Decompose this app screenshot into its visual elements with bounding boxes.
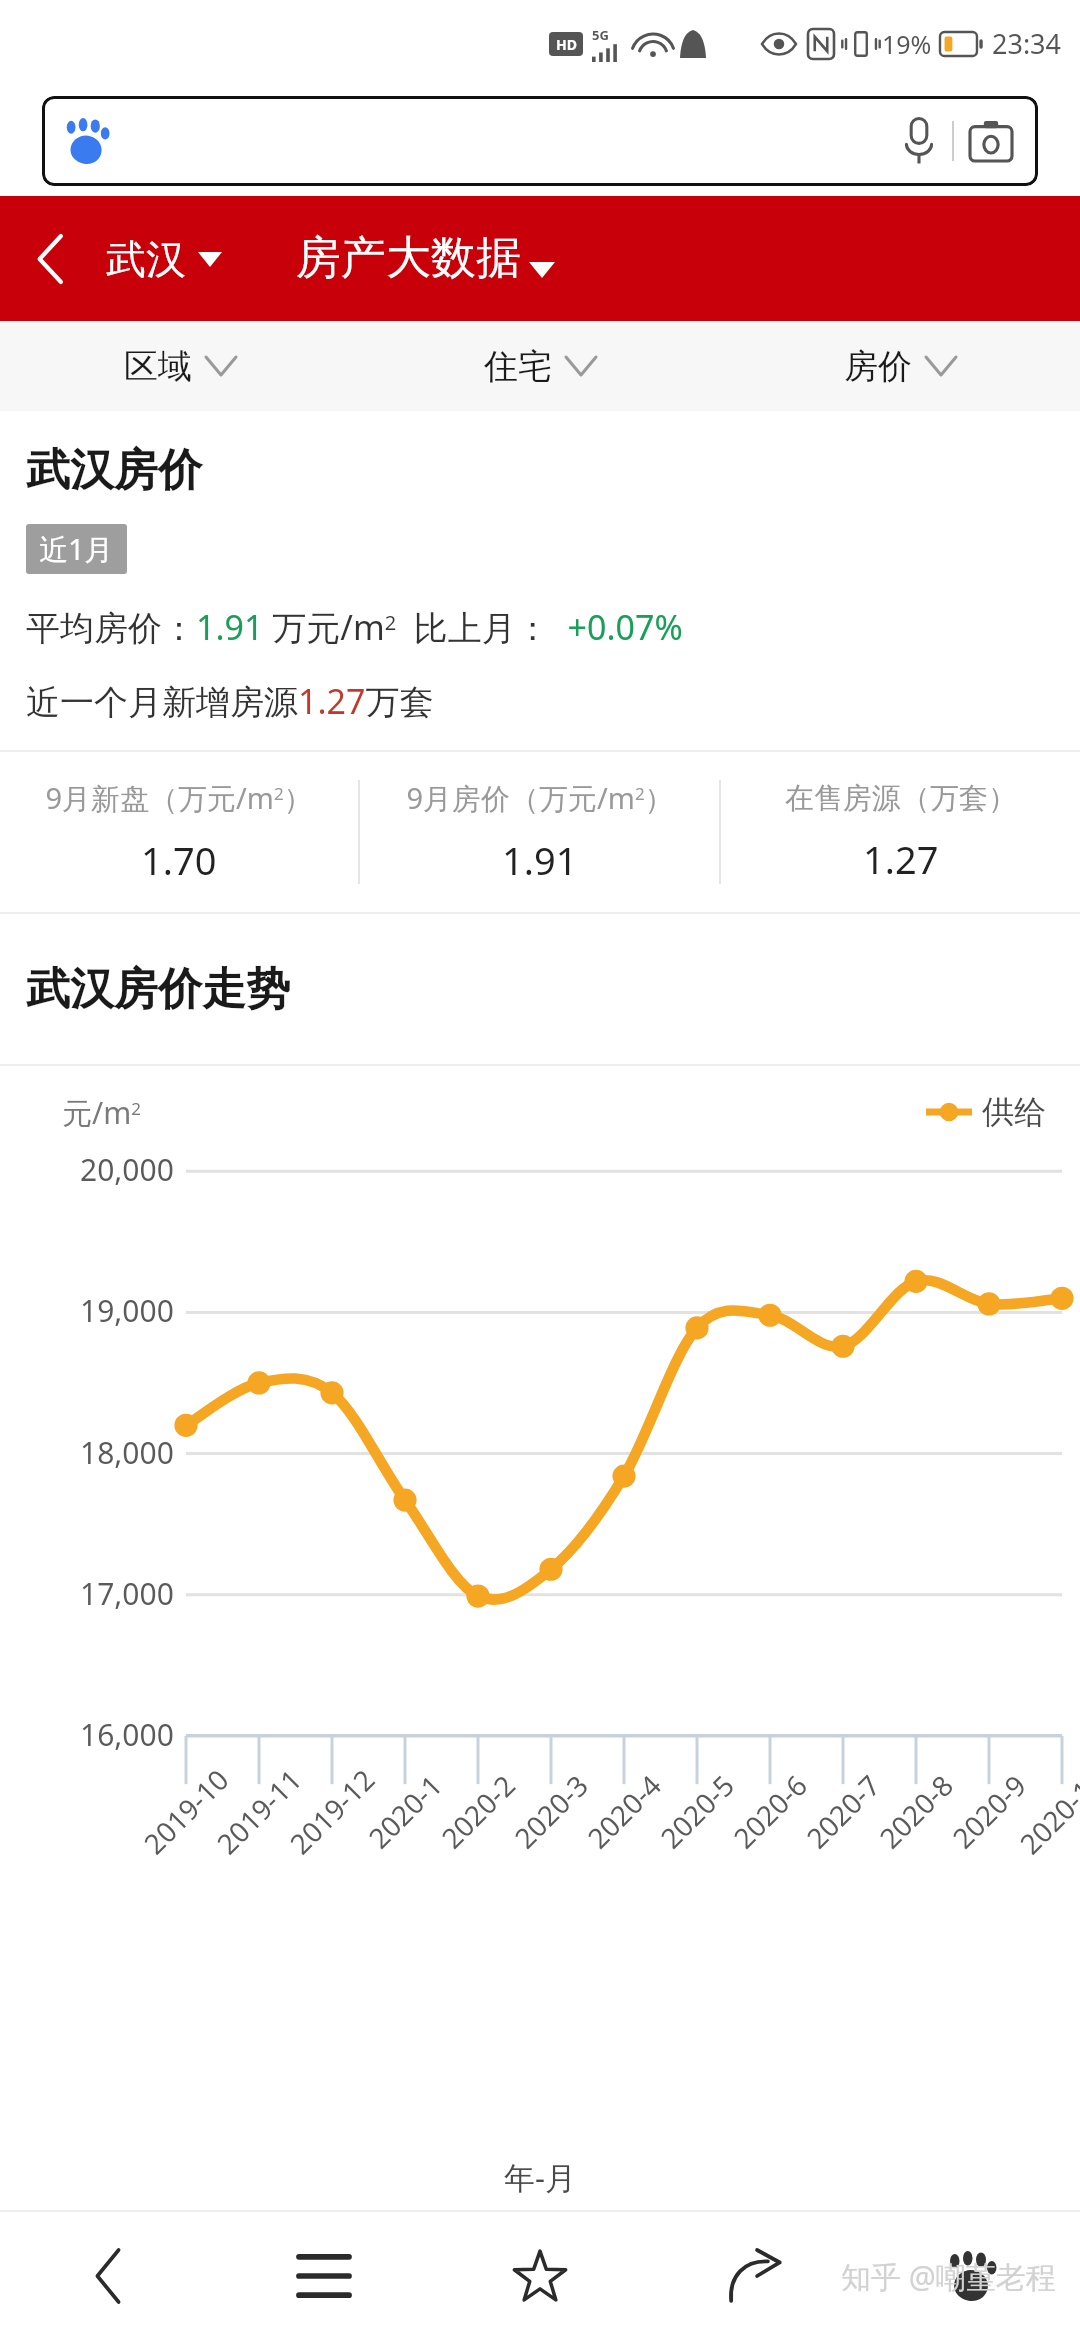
button[interactable]: 住宅 xyxy=(360,321,720,411)
button[interactable]: 供给 xyxy=(922,1088,1050,1136)
staticText: 2020-8 xyxy=(871,1766,961,1856)
staticText: 武汉 xyxy=(106,234,186,284)
staticText: 1.70 xyxy=(141,834,217,886)
staticText: 住宅 xyxy=(484,345,552,388)
staticText: 2019-11 xyxy=(208,1760,310,1862)
staticText: 19,000 xyxy=(80,1290,174,1331)
staticText: 9月房价（万元/m2） xyxy=(406,778,674,818)
button[interactable]: Share xyxy=(648,2212,864,2340)
staticText: 元/m2 xyxy=(62,1092,141,1133)
button[interactable]: Back xyxy=(0,2212,216,2340)
button[interactable]: 区域 xyxy=(0,321,360,411)
staticText: 区域 xyxy=(124,345,192,388)
staticText: 2020-9 xyxy=(944,1766,1034,1856)
staticText: 2020-3 xyxy=(506,1766,596,1856)
staticText: 9月新盘（万元/m2） xyxy=(45,778,313,818)
staticText: 1.91 xyxy=(502,834,578,886)
button[interactable]: 房价 xyxy=(720,321,1080,411)
staticText: 19% xyxy=(882,27,932,61)
button[interactable]: 9月房价（万元/m2） xyxy=(360,752,719,912)
staticText: 23:34 xyxy=(992,25,1062,62)
button[interactable]: 9月新盘（万元/m2） xyxy=(0,752,358,912)
button[interactable]: Favorite xyxy=(432,2212,648,2340)
staticText: 2020-4 xyxy=(579,1766,669,1856)
staticText: 平均房价：1.91 万元/m2 比上月： +0.07% xyxy=(26,604,683,650)
staticText: 2020-10 xyxy=(1011,1760,1080,1862)
staticText: 2020-5 xyxy=(652,1766,742,1856)
staticText: 2019-10 xyxy=(135,1760,237,1862)
button[interactable]: Camera search xyxy=(954,104,1028,178)
button[interactable]: Menu xyxy=(216,2212,432,2340)
staticText: HD xyxy=(556,35,577,54)
button[interactable]: Back xyxy=(0,196,100,321)
staticText: 房价 xyxy=(844,345,912,388)
button[interactable]: 武汉 xyxy=(100,226,228,292)
staticText: 年-月 xyxy=(504,2156,576,2198)
staticText: 17,000 xyxy=(80,1573,174,1614)
staticText: 近一个月新增房源1.27万套 xyxy=(26,678,434,724)
staticText: 2020-6 xyxy=(725,1766,815,1856)
staticText: 18,000 xyxy=(80,1432,174,1473)
staticText: 5G xyxy=(592,26,609,44)
button[interactable]: Baidu home xyxy=(864,2212,1080,2340)
button[interactable]: 房产大数据 xyxy=(290,222,561,295)
staticText: 房产大数据 xyxy=(296,230,521,287)
button[interactable]: Voice search xyxy=(886,108,952,174)
staticText: 2020-2 xyxy=(433,1766,523,1856)
staticText: 供给 xyxy=(982,1092,1046,1132)
staticText: 武汉房价 xyxy=(26,443,202,498)
staticText: 2019-12 xyxy=(281,1760,383,1862)
staticText: 知乎 @嘲堇老程 xyxy=(841,2256,1056,2297)
staticText: 1.27 xyxy=(863,833,939,885)
staticText: 2020-1 xyxy=(360,1766,450,1856)
staticText: 武汉房价走势 xyxy=(26,962,290,1017)
staticText: 20,000 xyxy=(80,1149,174,1190)
staticText: 近1月 xyxy=(39,529,114,569)
staticText: 在售房源（万套） xyxy=(785,780,1017,817)
staticText: 2020-7 xyxy=(798,1766,888,1856)
button[interactable]: Voice search xyxy=(42,96,1038,186)
button[interactable]: 在售房源（万套） xyxy=(721,752,1080,912)
staticText: 16,000 xyxy=(80,1714,174,1755)
